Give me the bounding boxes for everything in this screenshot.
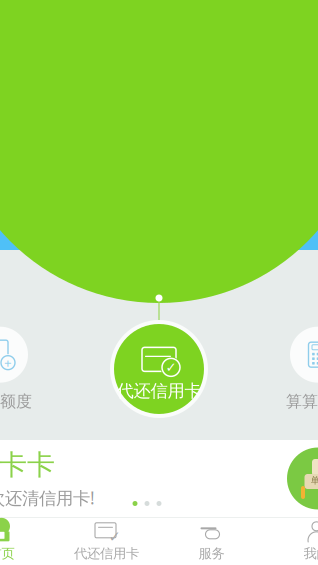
button[interactable]: ✓	[109, 319, 209, 419]
button[interactable]: 有	[0, 440, 318, 517]
button[interactable]: 算算费用	[281, 327, 318, 411]
staticText: 首页	[0, 545, 14, 562]
button[interactable]: 服务	[159, 518, 264, 564]
staticText: 卡卡	[0, 448, 55, 482]
staticText: 代还信用卡	[116, 380, 201, 402]
staticText: ✓	[108, 528, 120, 545]
staticText: 提升额度	[0, 392, 32, 411]
staticText: 服务	[198, 545, 224, 562]
staticText: 我的	[303, 545, 318, 562]
button[interactable]: ✓	[54, 518, 159, 564]
staticText: 单	[310, 475, 318, 486]
staticText: 算算费用	[286, 392, 318, 411]
staticText: +	[4, 354, 12, 371]
button[interactable]: ¥	[0, 327, 37, 411]
staticText: ✓	[165, 360, 176, 375]
staticText: 一次还清信用卡!	[0, 486, 95, 509]
staticText: 代还信用卡	[74, 545, 139, 562]
button[interactable]: 首页	[0, 518, 54, 564]
button[interactable]: 我的	[264, 518, 318, 564]
